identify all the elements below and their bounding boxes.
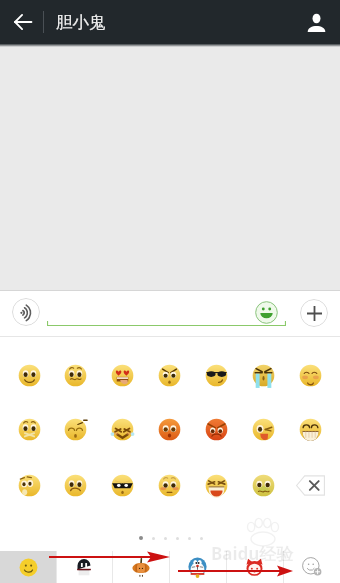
staticText: Baidu经验 (211, 542, 294, 565)
button[interactable]: Sticker tab 5 (226, 551, 283, 583)
button[interactable]: Emoji (99, 409, 146, 449)
button[interactable]: Emoji (6, 355, 52, 395)
button[interactable]: More options (300, 299, 328, 327)
button[interactable]: Emoji (193, 409, 240, 449)
button[interactable]: Sticker tab 3 (112, 551, 169, 583)
button[interactable]: Emoji (287, 355, 334, 395)
button[interactable]: Sticker tab 2 (56, 551, 112, 583)
button[interactable]: Emoji (6, 465, 52, 505)
button[interactable]: Sticker tab 4 (169, 551, 226, 583)
button[interactable]: Emoji (240, 409, 287, 449)
button[interactable]: Sticker tab 1 (0, 551, 56, 583)
button[interactable]: Emoji (146, 355, 193, 395)
button[interactable]: Sticker tab 6 (283, 551, 340, 583)
button[interactable]: Emoji (287, 409, 334, 449)
button[interactable]: Emoji (6, 409, 52, 449)
button[interactable]: Emoji (254, 300, 278, 324)
button[interactable]: Contact profile (299, 5, 333, 39)
staticText: 胆小鬼 (56, 12, 106, 33)
button[interactable]: Voice message (12, 298, 40, 326)
button[interactable]: Emoji (193, 355, 240, 395)
button[interactable]: Emoji (52, 409, 99, 449)
button[interactable]: Emoji (52, 355, 99, 395)
button[interactable]: Emoji (193, 465, 240, 505)
button[interactable]: Emoji (52, 465, 99, 505)
button[interactable]: Delete (287, 465, 334, 505)
button[interactable]: Emoji (99, 355, 146, 395)
button[interactable]: Back (5, 4, 41, 40)
button[interactable]: Emoji (146, 465, 193, 505)
button[interactable] (47, 304, 286, 326)
button[interactable]: Emoji (240, 465, 287, 505)
button[interactable]: Emoji (146, 409, 193, 449)
button[interactable]: Emoji (240, 355, 287, 395)
button[interactable]: Emoji (99, 465, 146, 505)
